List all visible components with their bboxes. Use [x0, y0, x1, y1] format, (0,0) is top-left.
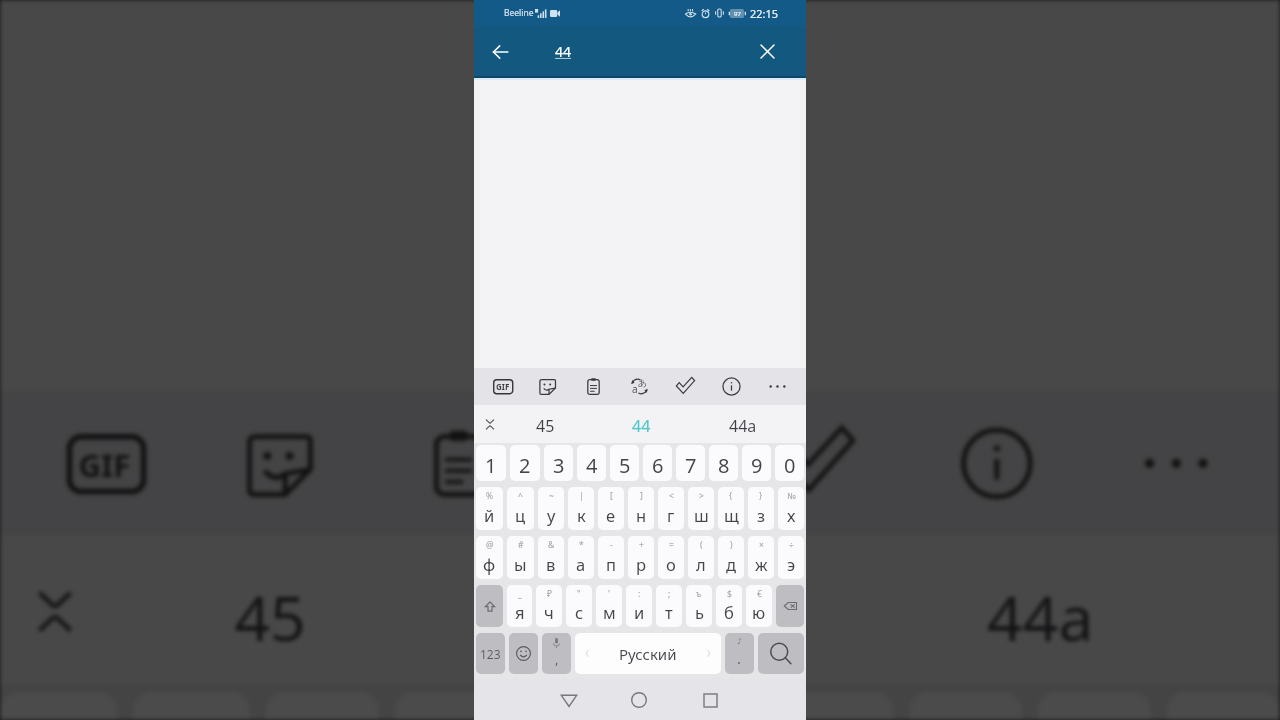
button[interactable]: ~: [538, 487, 564, 530]
button[interactable]: 1: [0, 691, 117, 720]
button[interactable]: 123: [476, 633, 505, 674]
button[interactable]: *: [568, 536, 594, 579]
staticText: и: [634, 601, 645, 623]
button[interactable]: [: [598, 487, 624, 530]
button[interactable]: 5: [523, 691, 636, 720]
button[interactable]: 3: [266, 691, 379, 720]
button[interactable]: №: [778, 487, 804, 530]
button[interactable]: 3: [544, 445, 573, 481]
staticText: ^: [518, 490, 523, 502]
button[interactable]: 2: [133, 691, 250, 720]
button[interactable]: @: [476, 536, 503, 579]
staticText: а: [576, 553, 586, 575]
button[interactable]: 8: [909, 691, 1022, 720]
button[interactable]: 4: [394, 691, 507, 720]
button[interactable]: _: [507, 585, 532, 627]
button[interactable]: Voice input and comma: [542, 633, 571, 674]
button[interactable]: <: [658, 487, 684, 530]
button[interactable]: Русский: [575, 633, 721, 674]
button[interactable]: 8: [709, 445, 738, 481]
button[interactable]: 7: [780, 691, 893, 720]
button[interactable]: 44: [555, 42, 572, 61]
staticText: *: [579, 539, 584, 551]
button[interactable]: Confirm: [662, 368, 708, 405]
button[interactable]: Recent apps: [688, 679, 732, 720]
button[interactable]: {: [718, 487, 744, 530]
button[interactable]: Close: [754, 38, 780, 64]
button[interactable]: 44: [584, 405, 698, 443]
button[interactable]: 0: [775, 445, 804, 481]
button[interactable]: +: [628, 536, 654, 579]
staticText: &: [548, 539, 555, 551]
button[interactable]: }: [748, 487, 774, 530]
button[interactable]: Clipboard: [367, 391, 546, 535]
button[interactable]: 4: [577, 445, 606, 481]
button[interactable]: ♪: [725, 633, 754, 674]
button[interactable]: (: [688, 536, 714, 579]
button[interactable]: 7: [676, 445, 705, 481]
button[interactable]: ': [596, 585, 622, 627]
button[interactable]: Confirm: [726, 391, 905, 535]
button[interactable]: Search: [758, 633, 804, 674]
button[interactable]: =: [658, 536, 684, 579]
button[interactable]: Emoji: [509, 633, 538, 674]
button[interactable]: ъ: [686, 585, 712, 627]
button[interactable]: 5: [610, 445, 639, 481]
button[interactable]: |: [568, 487, 594, 530]
button[interactable]: GIF: [16, 391, 191, 535]
button[interactable]: Information: [708, 368, 754, 405]
button[interactable]: Clipboard: [570, 368, 616, 405]
button[interactable]: -: [598, 536, 624, 579]
button[interactable]: %: [476, 487, 503, 530]
button[interactable]: Stickers: [191, 391, 367, 535]
button[interactable]: Shift: [476, 585, 503, 627]
button[interactable]: 1: [476, 445, 506, 481]
staticText: 45: [234, 574, 308, 660]
button[interactable]: ^: [507, 487, 534, 530]
button[interactable]: Back: [486, 37, 515, 66]
button[interactable]: :: [626, 585, 652, 627]
staticText: е: [606, 504, 616, 526]
button[interactable]: $: [716, 585, 742, 627]
button[interactable]: 45: [506, 405, 584, 443]
button[interactable]: ]: [628, 487, 654, 530]
staticText: }: [759, 490, 763, 502]
button[interactable]: 6: [643, 445, 672, 481]
button[interactable]: 44a: [866, 535, 1217, 684]
button[interactable]: >: [688, 487, 714, 530]
button[interactable]: 6: [652, 691, 765, 720]
button[interactable]: Home: [617, 679, 661, 720]
button[interactable]: Backspace: [776, 585, 804, 627]
button[interactable]: 0: [1166, 691, 1280, 720]
staticText: ♪: [737, 637, 743, 646]
button[interactable]: &: [538, 536, 564, 579]
button[interactable]: GIF: [480, 368, 525, 405]
button[interactable]: ÷: [778, 536, 804, 579]
button[interactable]: Information: [905, 391, 1085, 535]
button[interactable]: 44a: [698, 405, 788, 443]
button[interactable]: ): [718, 536, 744, 579]
button[interactable]: Collapse suggestions: [0, 535, 117, 684]
button[interactable]: ;: [656, 585, 682, 627]
staticText: ": [577, 588, 581, 600]
button[interactable]: Translate: [616, 368, 662, 405]
button[interactable]: Stickers: [525, 368, 570, 405]
button[interactable]: ₽: [536, 585, 562, 627]
button[interactable]: #: [507, 536, 534, 579]
button[interactable]: More options: [754, 368, 800, 405]
button[interactable]: 44: [422, 535, 866, 684]
button[interactable]: ": [566, 585, 592, 627]
button[interactable]: Translate: [546, 391, 726, 535]
button[interactable]: 2: [510, 445, 540, 481]
button[interactable]: More options: [1085, 391, 1264, 535]
staticText: a: [632, 382, 638, 396]
button[interactable]: €: [746, 585, 772, 627]
button[interactable]: Collapse suggestions: [474, 405, 506, 443]
staticText: ÷: [789, 539, 794, 551]
button[interactable]: 9: [742, 445, 771, 481]
button[interactable]: 9: [1038, 691, 1151, 720]
button[interactable]: 45: [117, 535, 422, 684]
staticText: ш: [694, 504, 709, 526]
button[interactable]: Back: [547, 679, 591, 720]
button[interactable]: ×: [748, 536, 774, 579]
